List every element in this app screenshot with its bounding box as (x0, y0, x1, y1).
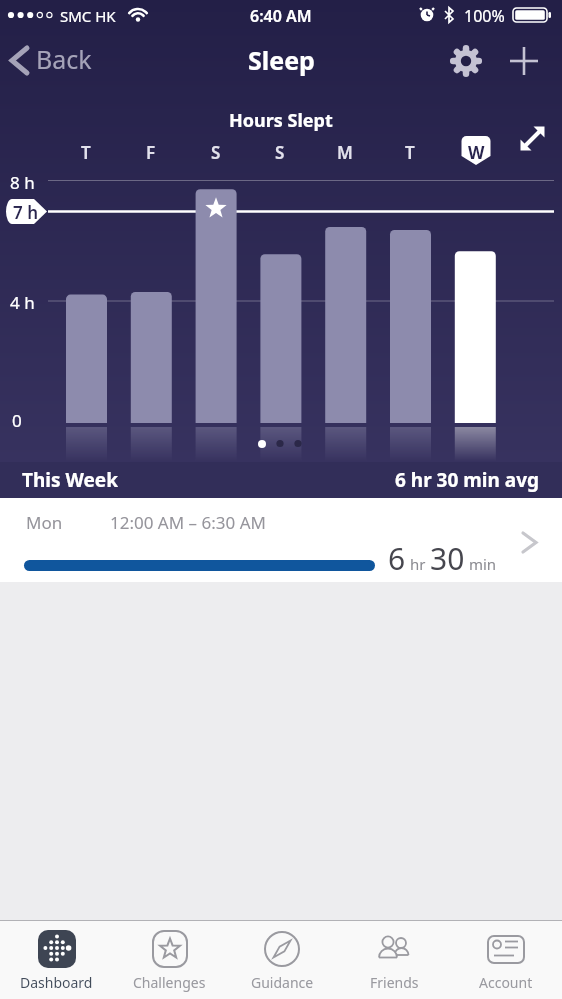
staticText: SMC HK (60, 6, 116, 26)
staticText: Dashboard (20, 973, 93, 992)
staticText: S (275, 141, 285, 164)
button[interactable]: Challenges (113, 921, 226, 999)
staticText: 4 h (10, 291, 35, 314)
staticText: M (337, 141, 353, 164)
staticText: 12:00 AM – 6:30 AM (110, 511, 266, 534)
button[interactable] (446, 42, 486, 82)
staticText: 7 h (13, 201, 38, 224)
button[interactable] (504, 42, 544, 82)
staticText: 6 (388, 538, 406, 579)
staticText: 6:40 AM (250, 5, 312, 27)
staticText: 8 h (10, 171, 35, 194)
staticText: hr (406, 554, 430, 574)
button[interactable]: Guidance (226, 921, 338, 999)
staticText: 100% (464, 5, 505, 27)
staticText: Challenges (133, 973, 206, 992)
staticText: min (465, 554, 497, 574)
button[interactable]: Back (0, 38, 140, 82)
staticText: W (468, 141, 485, 164)
staticText: Sleep (248, 43, 315, 77)
staticText: This Week (22, 467, 118, 493)
staticText: Back (36, 42, 92, 76)
button[interactable]: Friends (338, 921, 450, 999)
staticText: Guidance (251, 973, 314, 992)
staticText: 6 hr 30 min avg (395, 467, 540, 493)
staticText: T (81, 141, 91, 164)
staticText: Account (479, 973, 533, 992)
staticText: Hours Slept (229, 108, 333, 133)
staticText: Friends (370, 973, 419, 992)
staticText: 30 (430, 538, 465, 579)
button[interactable]: Account (450, 921, 562, 999)
button[interactable]: Dashboard (0, 921, 113, 999)
staticText: Mon (26, 511, 63, 534)
button[interactable]: Mon (0, 498, 562, 582)
staticText: 0 (12, 409, 22, 432)
staticText: F (146, 141, 156, 164)
staticText: S (211, 141, 221, 164)
staticText: T (405, 141, 415, 164)
